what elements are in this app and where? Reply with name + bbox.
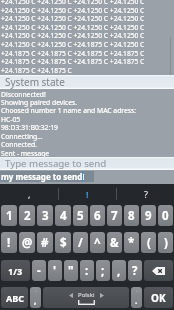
staticText: $	[60, 235, 67, 251]
staticText: /	[78, 235, 83, 251]
staticText: 0	[162, 208, 169, 224]
button[interactable]: @	[19, 232, 35, 253]
staticText: #	[41, 235, 49, 251]
staticText: +24.1875 C +24.1875 C +24.1875 C +24.187…	[1, 57, 145, 66]
staticText: 7	[111, 208, 118, 224]
staticText: 2	[24, 208, 31, 224]
button[interactable]: *	[124, 232, 139, 253]
button[interactable]: ^	[90, 232, 105, 253]
staticText: ?	[144, 188, 148, 200]
button[interactable]: "	[64, 260, 78, 281]
button[interactable]: 9	[141, 205, 156, 226]
staticText: ;	[101, 263, 105, 279]
staticText: .	[135, 295, 138, 306]
button[interactable]: 1/3	[1, 260, 30, 281]
button[interactable]: 6	[90, 205, 105, 226]
staticText: +24.1250 C +24.1250 C +24.1250 C +24.125…	[1, 23, 145, 32]
button[interactable]: 2	[19, 205, 35, 226]
staticText: ^	[94, 235, 101, 251]
staticText: 98:D3:31:B0:32:19	[1, 123, 58, 132]
staticText: ,	[117, 263, 121, 279]
staticText: Sent - message	[1, 149, 50, 158]
staticText: ,	[28, 188, 31, 200]
button[interactable]: ‘‘	[30, 287, 41, 308]
staticText: OK	[151, 291, 166, 305]
button[interactable]: (	[141, 232, 156, 253]
staticText: @	[22, 235, 33, 251]
button[interactable]: ?	[128, 260, 142, 281]
staticText: +24.1250 C +24.1250 C +24.1250 C +24.125…	[1, 31, 145, 40]
button[interactable]: &	[107, 232, 122, 253]
staticText: HC-05	[1, 115, 21, 124]
button[interactable]: !	[1, 232, 17, 253]
button[interactable]: 4	[55, 205, 71, 226]
button[interactable]: ,	[112, 260, 126, 281]
staticText: Type message to send	[5, 157, 107, 170]
staticText: Polski	[78, 291, 95, 299]
staticText: 6	[94, 208, 101, 224]
staticText: +24.1250 C +24.1250 C +24.1875 C +24.125…	[1, 40, 145, 49]
staticText: System state	[5, 75, 65, 89]
staticText: my message to send!	[1, 171, 85, 182]
button[interactable]: ,	[0, 184, 58, 204]
staticText: ,	[34, 295, 37, 306]
staticText: )	[164, 235, 168, 251]
staticText: 3	[42, 208, 49, 224]
staticText: :	[85, 263, 89, 279]
button[interactable]: Backspace	[144, 260, 173, 281]
staticText: ABC	[6, 292, 24, 304]
button[interactable]: /	[73, 232, 88, 253]
button[interactable]: ;	[96, 260, 110, 281]
staticText: +24.1875 C +24.1875 C	[1, 66, 72, 75]
staticText: '	[53, 263, 57, 279]
staticText: +24.1875 C +24.1875 C +24.1875 C +24.187…	[1, 49, 145, 58]
staticText: 9	[145, 208, 152, 224]
staticText: *	[128, 235, 135, 251]
button[interactable]: 1	[1, 205, 17, 226]
staticText: 4	[60, 208, 67, 224]
staticText: Connected.	[1, 140, 37, 149]
staticText: Connecting...	[1, 132, 43, 141]
staticText: Disconnected!	[1, 90, 46, 99]
button[interactable]: Space	[43, 287, 129, 308]
button[interactable]: OK	[144, 287, 173, 308]
button[interactable]: )	[158, 232, 173, 253]
button[interactable]: ABC	[1, 287, 28, 308]
button[interactable]: 0	[158, 205, 173, 226]
button[interactable]: '	[48, 260, 62, 281]
staticText: &	[110, 235, 119, 251]
staticText: "	[68, 263, 74, 279]
button[interactable]: 5	[73, 205, 88, 226]
button[interactable]: :	[80, 260, 94, 281]
staticText: 8	[128, 208, 135, 224]
staticText: !	[86, 188, 89, 200]
button[interactable]: 8	[124, 205, 139, 226]
staticText: Showing paired devices.	[1, 98, 78, 107]
button[interactable]: !	[59, 184, 116, 204]
staticText: +24.1250 C +24.1250 C +24.1250 C +24.125…	[1, 0, 145, 6]
button[interactable]: $	[55, 232, 71, 253]
staticText: ?	[132, 263, 138, 279]
button[interactable]: 7	[107, 205, 122, 226]
button[interactable]: ‘‘	[131, 287, 142, 308]
staticText: ‘‘	[136, 290, 138, 295]
staticText: 1	[6, 208, 13, 224]
staticText: !	[7, 235, 11, 251]
staticText: Choosed number 1 name and MAC adress:	[1, 106, 137, 115]
button[interactable]: 3	[37, 205, 53, 226]
staticText: 1/3	[8, 265, 23, 277]
staticText: +24.1250 C +24.1250 C +24.1250 C +24.125…	[1, 14, 145, 23]
button[interactable]: ?	[117, 184, 174, 204]
staticText: 5	[77, 208, 84, 224]
staticText: (	[147, 235, 151, 251]
staticText: ‘‘	[35, 290, 37, 295]
button[interactable]: #	[37, 232, 53, 253]
button[interactable]: -	[32, 260, 46, 281]
staticText: -	[37, 263, 41, 279]
staticText: +24.1250 C +24.1250 C +24.1250 C +24.125…	[1, 6, 145, 15]
